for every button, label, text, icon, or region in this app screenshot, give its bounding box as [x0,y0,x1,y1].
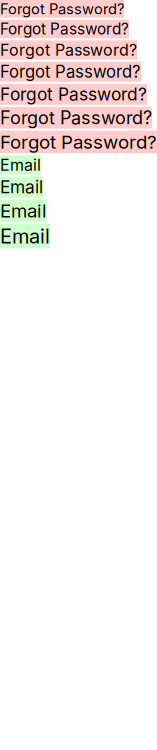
staticText: Forgot Password? [0,131,157,153]
staticText: Email [0,176,43,197]
staticText: Email [0,155,41,175]
staticText: Forgot Password? [0,84,147,105]
staticText: Email [0,224,50,248]
staticText: Forgot Password? [0,20,129,38]
staticText: Forgot Password? [0,62,141,82]
staticText: Forgot Password? [0,40,137,60]
staticText: Forgot Password? [0,107,152,129]
staticText: Forgot Password? [0,0,124,18]
staticText: Email [0,199,47,222]
